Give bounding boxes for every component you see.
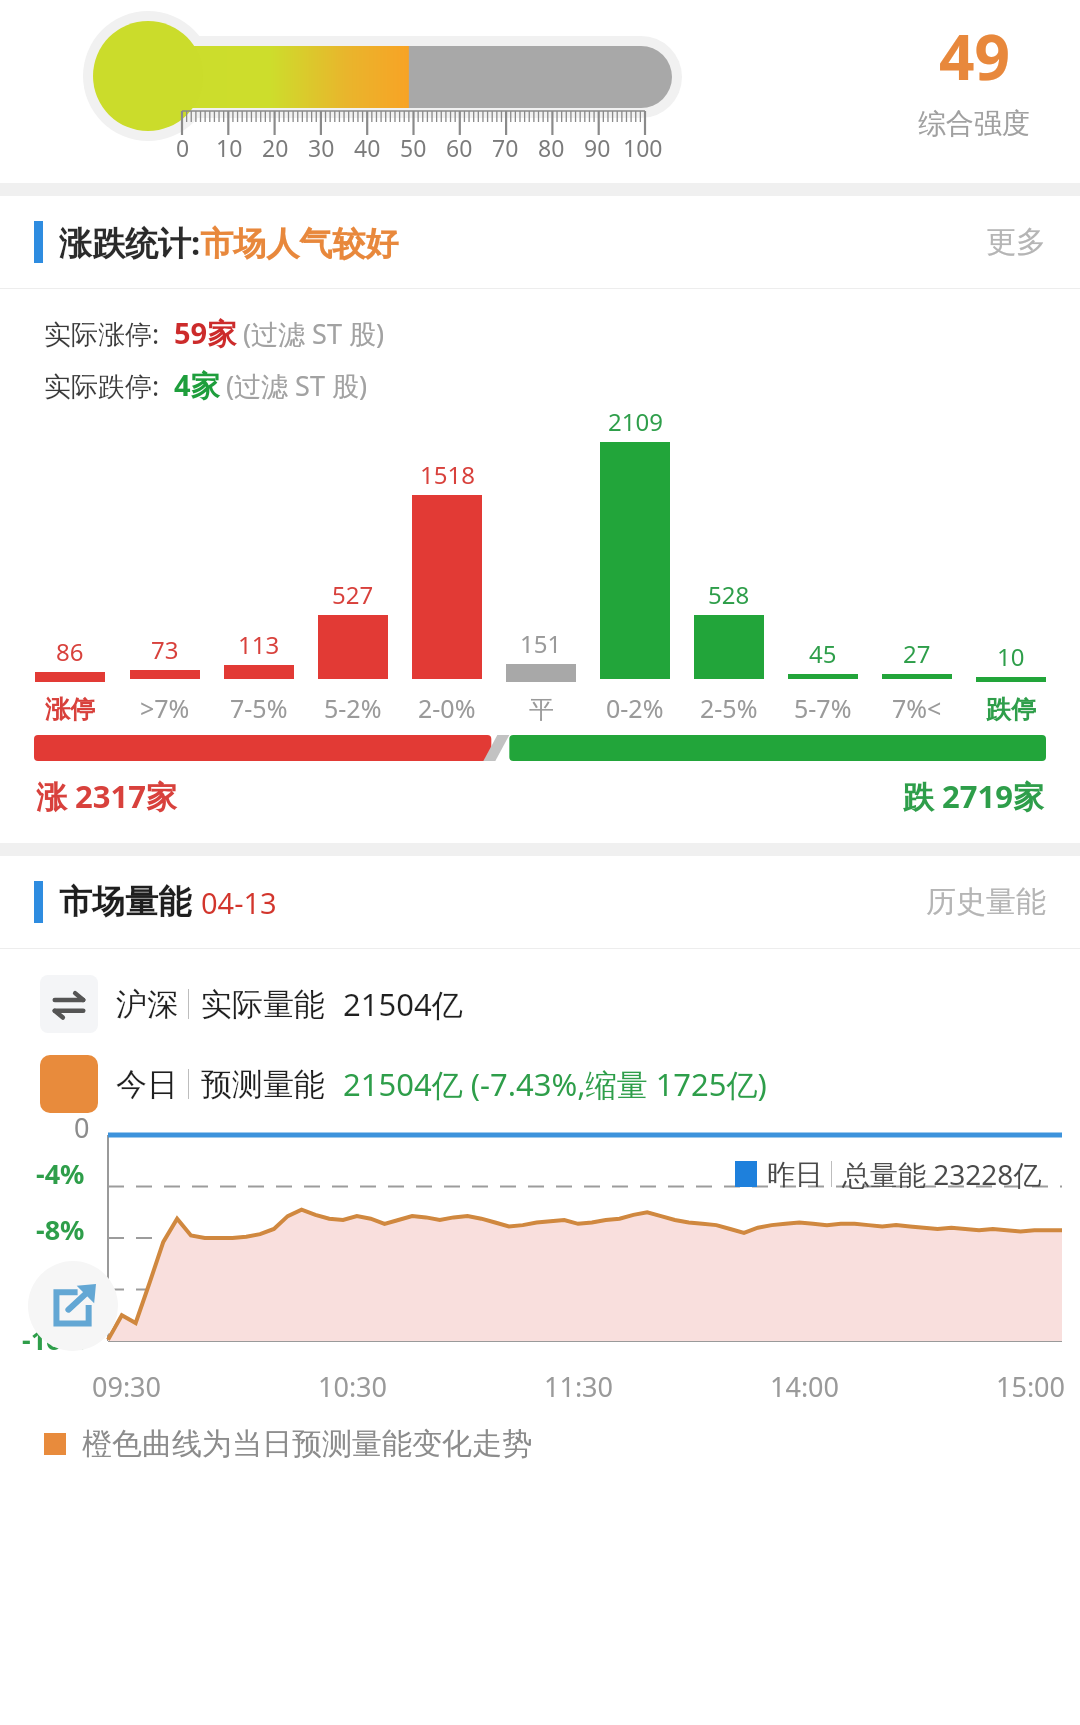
staticText: 70 bbox=[492, 132, 519, 163]
staticText: 527 bbox=[332, 578, 374, 611]
staticText: 59家 bbox=[174, 313, 237, 353]
staticText: 0 bbox=[74, 1109, 90, 1146]
staticText: 实际跌停: bbox=[44, 367, 160, 404]
staticText: -8% bbox=[36, 1211, 85, 1248]
staticText: 昨日 bbox=[767, 1157, 823, 1192]
staticText: 市场量能 bbox=[59, 881, 191, 923]
staticText: 73 bbox=[151, 633, 179, 666]
staticText: 更多 bbox=[986, 223, 1046, 261]
staticText: 11:30 bbox=[544, 1368, 614, 1405]
staticText: 21504亿 bbox=[343, 983, 463, 1025]
staticText: 涨停 bbox=[45, 694, 95, 725]
staticText: 10:30 bbox=[318, 1368, 388, 1405]
staticText: 86 bbox=[56, 635, 84, 668]
staticText: 7-5% bbox=[230, 691, 288, 725]
staticText: 15:00 bbox=[996, 1368, 1066, 1405]
staticText: 27 bbox=[903, 637, 931, 670]
button[interactable]: 今日 bbox=[40, 1055, 1080, 1113]
staticText: 2-5% bbox=[700, 691, 758, 725]
staticText: 涨 2317家 bbox=[36, 775, 177, 817]
staticText: 橙色曲线为当日预测量能变化走势 bbox=[82, 1425, 532, 1463]
staticText: 预测量能 bbox=[201, 1065, 325, 1104]
staticText: 50 bbox=[400, 132, 427, 163]
staticText: 21504亿 (-7.43%,缩量 1725亿) bbox=[343, 1063, 767, 1105]
button[interactable]: 沪深 bbox=[40, 975, 1080, 1033]
staticText: 10 bbox=[997, 640, 1025, 673]
staticText: 历史量能 bbox=[926, 883, 1046, 921]
staticText: 5-2% bbox=[324, 691, 382, 725]
staticText: 20 bbox=[262, 132, 289, 163]
staticText: 2109 bbox=[608, 405, 663, 438]
button[interactable]: Share bbox=[28, 1261, 118, 1351]
staticText: 0 bbox=[176, 132, 190, 163]
staticText: 151 bbox=[520, 627, 562, 660]
staticText: 跌 2719家 bbox=[903, 775, 1044, 817]
staticText: 528 bbox=[708, 578, 750, 611]
button[interactable]: 涨跌统计:市场人气较好 bbox=[0, 196, 1080, 288]
staticText: >7% bbox=[140, 691, 190, 725]
staticText: 30 bbox=[308, 132, 335, 163]
staticText: 0-2% bbox=[606, 691, 664, 725]
staticText: (过滤 ST 股) bbox=[243, 315, 385, 352]
staticText: 平 bbox=[529, 694, 554, 725]
staticText: 跌停 bbox=[986, 694, 1036, 725]
staticText: 1518 bbox=[420, 458, 475, 491]
staticText: 实际涨停: bbox=[44, 315, 160, 352]
staticText: 09:30 bbox=[92, 1368, 162, 1405]
staticText: 5-7% bbox=[794, 691, 852, 725]
staticText: 113 bbox=[238, 628, 280, 661]
staticText: 沪深 bbox=[116, 985, 178, 1024]
button[interactable]: 市场量能 bbox=[0, 856, 1080, 948]
staticText: 4家 bbox=[174, 365, 220, 405]
staticText: 7%< bbox=[892, 691, 942, 725]
staticText: 涨跌统计:市场人气较好 bbox=[59, 220, 399, 265]
staticText: 今日 bbox=[116, 1065, 178, 1104]
staticText: 80 bbox=[538, 132, 565, 163]
staticText: 100 bbox=[623, 132, 663, 163]
staticText: 49 bbox=[939, 14, 1010, 98]
staticText: 40 bbox=[354, 132, 381, 163]
staticText: 综合强度 bbox=[918, 106, 1030, 141]
staticText: 14:00 bbox=[770, 1368, 840, 1405]
staticText: -16% bbox=[22, 1321, 86, 1358]
staticText: 60 bbox=[446, 132, 473, 163]
staticText: 04-13 bbox=[201, 883, 277, 922]
staticText: 总量能 23228亿 bbox=[842, 1155, 1042, 1193]
staticText: 实际量能 bbox=[201, 985, 325, 1024]
staticText: -4% bbox=[36, 1155, 85, 1192]
staticText: 45 bbox=[809, 637, 837, 670]
staticText: 2-0% bbox=[418, 691, 476, 725]
staticText: 10 bbox=[216, 132, 243, 163]
staticText: 90 bbox=[584, 132, 611, 163]
staticText: (过滤 ST 股) bbox=[226, 367, 368, 404]
